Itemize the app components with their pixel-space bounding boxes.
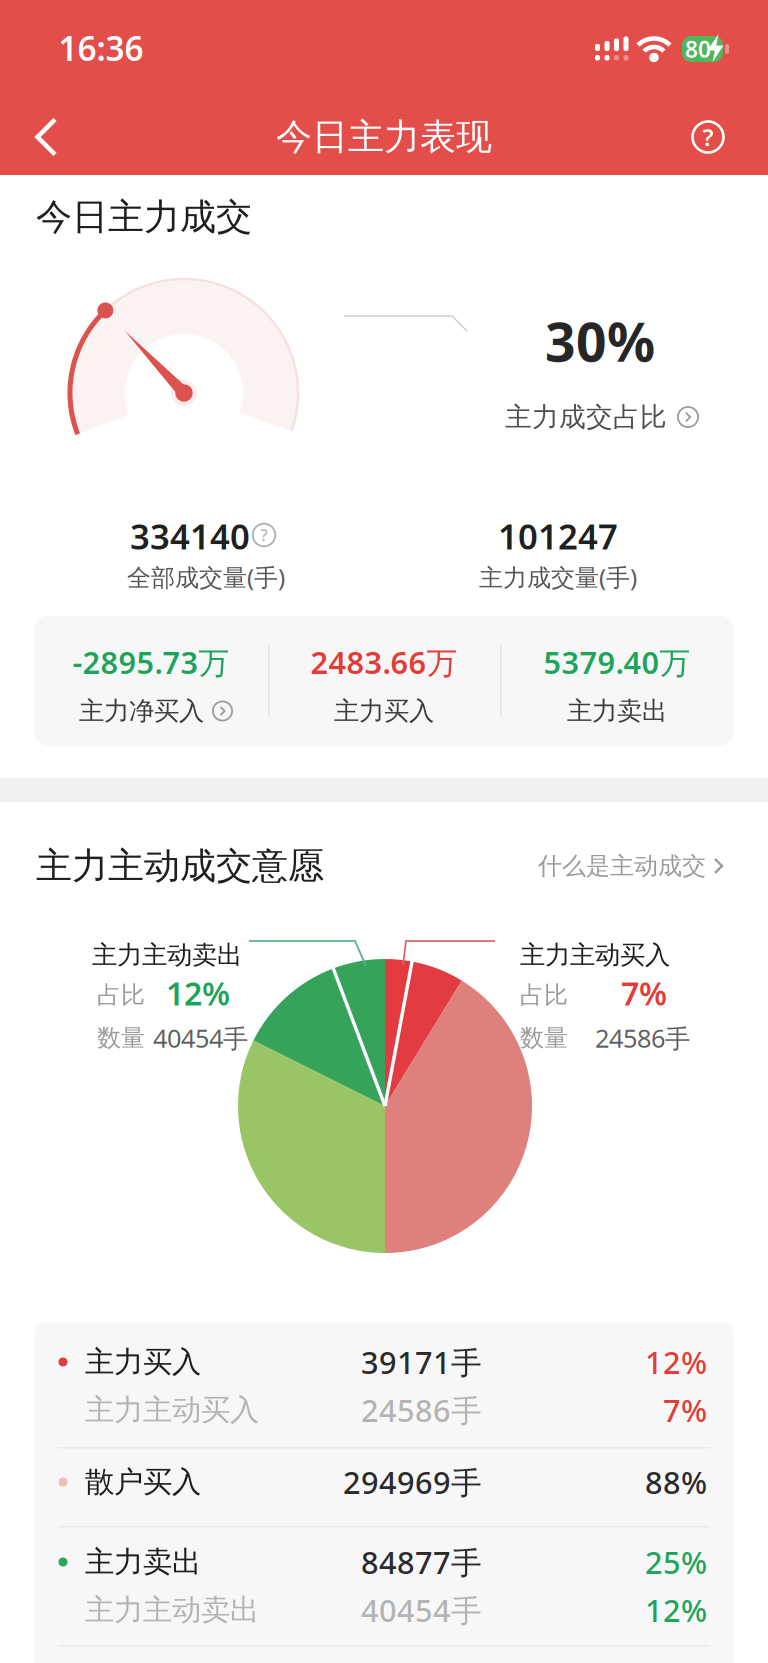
staticText: 主力净买入 (79, 695, 204, 726)
staticText: 101247 (498, 513, 618, 559)
staticText: 2483.66万 (310, 642, 457, 682)
staticText: 主力主动买入 (85, 1392, 259, 1428)
staticText: 39171手 (361, 1342, 482, 1382)
staticText: 5379.40万 (543, 642, 690, 682)
staticText: ? (260, 524, 267, 546)
staticText: 数量 (97, 1023, 145, 1053)
staticText: 今日主力成交 (36, 195, 252, 239)
staticText: 什么是主动成交 (538, 851, 706, 881)
staticText: 全部成交量(手) (127, 561, 285, 593)
staticText: 80 (685, 34, 711, 64)
staticText: 主力卖出 (85, 1544, 201, 1580)
staticText: 294969手 (343, 1462, 482, 1502)
staticText: 334140 (130, 513, 250, 559)
staticText: 12% (645, 1590, 707, 1630)
button[interactable]: 帮助 (686, 115, 730, 159)
staticText: 16:36 (58, 26, 143, 70)
staticText: -2895.73万 (72, 642, 229, 682)
staticText: ? (702, 121, 713, 153)
button[interactable]: 主力净买入 (71, 691, 241, 731)
button[interactable]: 主力成交占比 (492, 395, 712, 439)
staticText: 主力主动卖出 (85, 1592, 259, 1628)
staticText: 12% (645, 1342, 707, 1382)
button[interactable]: 全部成交量说明 (251, 522, 277, 548)
staticText: 7% (663, 1390, 707, 1430)
staticText: 今日主力表现 (276, 115, 492, 159)
staticText: 30% (545, 306, 655, 376)
staticText: 88% (645, 1462, 707, 1502)
staticText: 主力成交占比 (505, 401, 667, 433)
staticText: 主力成交量(手) (479, 561, 637, 593)
button[interactable]: 什么是主动成交 (517, 844, 747, 888)
staticText: 12% (166, 972, 230, 1014)
staticText: 40454手 (153, 1021, 248, 1055)
staticText: 占比 (520, 980, 568, 1010)
staticText: 主力卖出 (567, 695, 667, 726)
staticText: 40454手 (361, 1590, 482, 1630)
staticText: 主力主动卖出 (92, 939, 242, 970)
staticText: 25% (645, 1542, 707, 1582)
staticText: 数量 (520, 1023, 568, 1053)
button[interactable]: 返回 (26, 115, 70, 159)
staticText: 24586手 (361, 1390, 482, 1430)
staticText: 84877手 (361, 1542, 482, 1582)
staticText: 主力买入 (334, 695, 434, 726)
staticText: 主力主动买入 (520, 939, 670, 970)
staticText: 主力买入 (85, 1344, 201, 1380)
staticText: 主力主动成交意愿 (36, 844, 324, 888)
staticText: 占比 (97, 980, 145, 1010)
staticText: 24586手 (595, 1021, 690, 1055)
staticText: 7% (621, 972, 667, 1014)
staticText: 散户买入 (85, 1464, 201, 1500)
